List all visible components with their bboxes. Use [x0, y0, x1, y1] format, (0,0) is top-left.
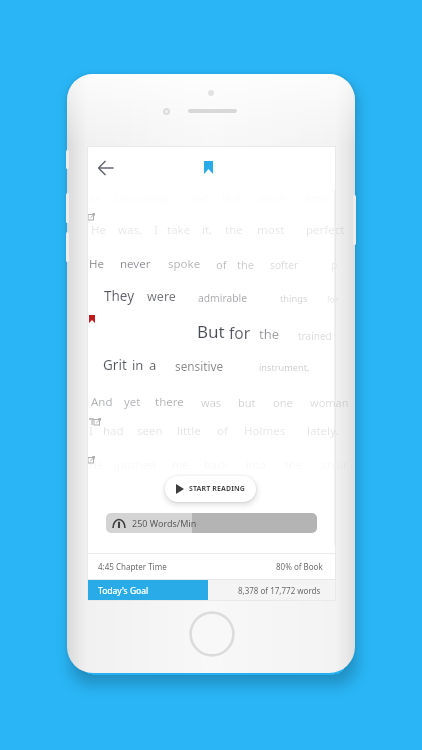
staticText: but	[238, 395, 256, 410]
button[interactable]: Today's Goal	[87, 580, 208, 601]
staticText: 4:45 Chapter Time	[98, 561, 167, 572]
staticText: there	[155, 394, 184, 410]
staticText: had	[103, 423, 124, 439]
staticText: seen	[137, 423, 163, 439]
button[interactable]: Back	[90, 152, 122, 184]
staticText: sensitive	[175, 358, 224, 374]
staticText: He	[91, 222, 107, 238]
staticText: the	[259, 325, 280, 343]
staticText: most	[257, 222, 285, 238]
staticText: spoke	[168, 256, 201, 272]
staticText: trained	[298, 329, 332, 343]
staticText: Grit	[103, 356, 127, 374]
staticText: I	[154, 222, 158, 238]
staticText: Holmes	[244, 423, 286, 439]
staticText: never	[120, 256, 151, 272]
staticText: were	[147, 288, 176, 305]
staticText: woman	[310, 395, 349, 410]
staticText: the	[225, 222, 243, 238]
staticText: in	[132, 356, 144, 374]
staticText: was,	[118, 222, 143, 238]
staticText: 8,378 of 17,772 words	[238, 585, 321, 596]
staticText: the	[237, 257, 254, 272]
staticText: take	[167, 222, 191, 238]
staticText: 80% of Book	[276, 561, 323, 572]
button[interactable]: START READING	[165, 476, 256, 502]
staticText: And	[91, 394, 113, 410]
staticText: 250 Words/Min	[132, 517, 197, 529]
staticText: admirable	[198, 291, 248, 305]
staticText: of	[217, 423, 228, 439]
staticText: little	[177, 423, 201, 439]
staticText: I	[89, 423, 93, 439]
staticText: things	[280, 292, 308, 305]
staticText: for	[327, 294, 339, 305]
staticText: softer	[270, 258, 299, 272]
staticText: But	[197, 320, 225, 343]
staticText: He	[89, 256, 105, 272]
staticText: it,	[202, 222, 213, 238]
staticText: instrument,	[259, 361, 310, 374]
staticText: Today's Goal	[98, 585, 149, 597]
staticText: START READING	[189, 484, 245, 494]
staticText: He	[89, 457, 104, 472]
staticText: They	[104, 287, 135, 305]
staticText: a	[149, 356, 157, 374]
staticText: was	[201, 395, 222, 410]
button[interactable]: Bookmark	[192, 151, 224, 183]
staticText: perfect	[306, 222, 345, 238]
staticText: for	[229, 322, 251, 343]
staticText: yet	[124, 394, 141, 410]
staticText: of	[216, 257, 227, 272]
staticText: lately.	[307, 423, 339, 439]
staticText: one	[273, 395, 293, 410]
staticText: p	[331, 258, 338, 272]
staticText: chair.	[322, 457, 349, 472]
